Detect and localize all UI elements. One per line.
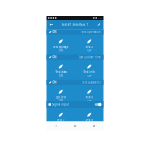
button[interactable]: Test 7 <box>46 108 75 128</box>
button[interactable]: Test storage <box>46 35 75 55</box>
staticText: ON <box>52 55 56 59</box>
staticText: ON <box>52 30 56 34</box>
staticText: Signal input <box>52 103 69 106</box>
staticText: Test 8 <box>85 118 93 122</box>
staticText: Last update time <box>79 55 101 59</box>
staticText: ON <box>59 49 63 52</box>
staticText: LED Test <box>56 95 66 99</box>
staticText: Test operation <box>81 30 101 34</box>
staticText: Test 7 <box>57 118 65 122</box>
button[interactable]: Home <box>65 121 84 130</box>
button[interactable]: ON <box>46 80 103 85</box>
staticText: OFF <box>87 99 91 102</box>
staticText: ON <box>52 81 56 84</box>
staticText: Test parameter <box>82 81 101 84</box>
button[interactable]: Test 6 <box>75 85 103 101</box>
button[interactable]: ON <box>46 55 103 60</box>
button[interactable]: Recents <box>84 121 103 130</box>
button[interactable]: Test info <box>75 60 103 80</box>
button[interactable]: Back <box>46 121 65 130</box>
staticText: Test info <box>83 70 95 74</box>
button[interactable]: ON <box>46 29 103 35</box>
staticText: OFF <box>87 49 91 52</box>
button[interactable]: LED Test <box>46 85 75 101</box>
staticText: Test #1 Interface 1 <box>61 23 88 26</box>
button[interactable]: Signal input <box>46 101 103 108</box>
button[interactable]: Test 2 <box>75 35 103 55</box>
button[interactable]: Test data <box>46 60 75 80</box>
staticText: Test storage <box>53 45 69 49</box>
staticText: Test data <box>55 70 66 74</box>
staticText: Test 2 <box>85 45 93 49</box>
staticText: OFF <box>87 74 91 77</box>
button[interactable]: Edit <box>95 20 103 29</box>
button[interactable]: Test 8 <box>75 108 103 128</box>
staticText: ON <box>59 99 63 102</box>
staticText: 11:48 <box>98 17 102 19</box>
staticText: ON <box>59 74 63 77</box>
staticText: Test 6 <box>85 95 93 99</box>
button[interactable]: Back <box>47 20 55 29</box>
